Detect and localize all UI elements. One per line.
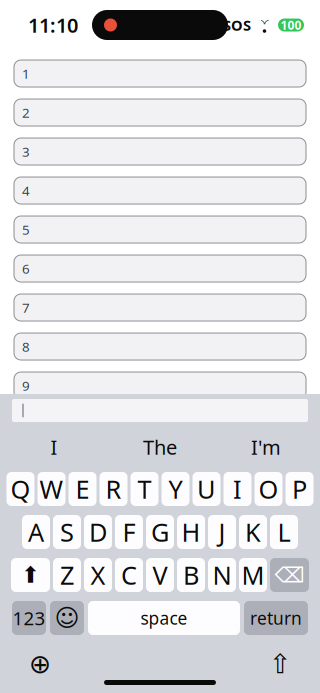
staticText: N [212,558,231,592]
button[interactable]: Shift [11,558,50,592]
button[interactable]: A [22,515,50,549]
button[interactable]: Numbers [12,601,46,635]
button[interactable]: 2 [14,99,306,126]
staticText: P [292,472,307,506]
button[interactable]: Next keyboard [26,647,54,681]
button[interactable]: Dictation [266,647,294,681]
staticText: F [122,515,135,549]
button[interactable]: T [130,472,158,506]
staticText: SOS [223,15,251,35]
staticText: ☺ [54,604,79,632]
button[interactable]: 3 [14,138,306,165]
button[interactable]: E [68,472,96,506]
staticText: V [152,558,167,592]
button[interactable]: B [177,558,205,592]
staticText: 9 [22,377,30,394]
button[interactable]: J [208,515,236,549]
button[interactable]: H [177,515,205,549]
button[interactable]: Q [6,472,34,506]
staticText: 7 [22,299,30,316]
staticText: ⬆ [21,562,40,588]
staticText: O [258,472,278,506]
button[interactable]: Delete [270,558,309,592]
staticText: 11:10 [28,12,78,38]
button[interactable]: Y [161,472,189,506]
button[interactable]: N [208,558,236,592]
button[interactable]: 9 [14,372,306,399]
staticText: R [105,472,121,506]
button[interactable]: U [192,472,220,506]
staticText: ⌫ [274,563,304,587]
button[interactable]: G [146,515,174,549]
button[interactable]: D [84,515,112,549]
staticText: E [75,472,89,506]
staticText: 5 [22,221,30,238]
button[interactable]: M [239,558,267,592]
staticText: I [233,472,242,506]
button[interactable]: V [146,558,174,592]
staticText: L [277,515,290,549]
button[interactable]: O [254,472,282,506]
staticText: Q [10,472,30,506]
button[interactable]: I [1,427,107,467]
staticText: 100 [280,17,301,33]
staticText: I [50,434,57,460]
button[interactable]: X [84,558,112,592]
button[interactable]: C [115,558,143,592]
button[interactable]: R [99,472,127,506]
button[interactable]: S [53,515,81,549]
button[interactable]: I'm [213,427,319,467]
staticText: 3 [22,143,30,160]
staticText: 123 [12,606,45,630]
staticText: X [90,558,105,592]
staticText: 6 [22,260,30,277]
staticText: I'm [251,434,281,460]
staticText: ⊕ [29,649,51,679]
button[interactable]: 1 [14,60,306,87]
staticText: M [241,558,264,592]
staticText: The [143,434,177,460]
button[interactable]: I [223,472,251,506]
staticText: C [121,558,137,592]
staticText: 2 [22,104,30,121]
staticText: K [245,515,261,549]
staticText: space [140,606,187,629]
staticText: S [60,515,74,549]
staticText: G [151,515,169,549]
staticText: B [183,558,199,592]
button[interactable]: Space [88,601,240,635]
staticText: 4 [22,182,30,199]
button[interactable]: P [285,472,313,506]
staticText: H [181,515,200,549]
staticText: 1 [22,65,30,82]
staticText: U [197,472,216,506]
staticText: 8 [22,338,30,355]
staticText: Z [60,558,74,592]
staticText: T [137,472,151,506]
staticText: Y [168,472,182,506]
staticText: ⇧ [269,649,291,679]
staticText: A [28,515,44,549]
button[interactable]: 8 [14,333,306,360]
button[interactable]: 7 [14,294,306,321]
button[interactable]: The [107,427,213,467]
staticText: W [39,472,63,506]
button[interactable]: K [239,515,267,549]
staticText: ◝◜ [260,17,268,29]
button[interactable]: F [115,515,143,549]
staticText: J [218,515,225,549]
button[interactable]: Z [53,558,81,592]
staticText: D [89,515,107,549]
button[interactable] [12,399,308,422]
staticText: return [250,606,302,629]
button[interactable]: 4 [14,177,306,204]
button[interactable]: Emoji [50,601,84,635]
button[interactable]: 5 [14,216,306,243]
button[interactable]: L [270,515,298,549]
button[interactable]: 6 [14,255,306,282]
button[interactable]: Return [244,601,308,635]
button[interactable]: W [37,472,65,506]
